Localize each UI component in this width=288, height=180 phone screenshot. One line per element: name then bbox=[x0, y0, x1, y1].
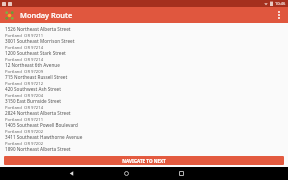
button[interactable]: Home bbox=[120, 167, 133, 180]
staticText: 1890 Northeast Alberta Street bbox=[5, 146, 71, 152]
staticText: Monday Route bbox=[20, 10, 73, 20]
staticText: 2824 Northeast Alberta Street bbox=[5, 110, 71, 116]
staticText: Portland, OR 97214 bbox=[5, 45, 44, 49]
staticText: 3411 Southeast Hawthorne Avenue bbox=[5, 134, 83, 140]
staticText: 1405 Southeast Powell Boulevard bbox=[5, 122, 78, 128]
button[interactable]: 3001 Southeast Morrison Street bbox=[0, 37, 288, 49]
staticText: Portland, OR 97202 bbox=[5, 141, 44, 145]
button[interactable]: Recent apps bbox=[175, 167, 188, 180]
staticText: Portland, OR 97211 bbox=[5, 117, 44, 121]
button[interactable]: 420 Southwest Ash Street bbox=[0, 85, 288, 97]
staticText: Portland, OR 97214 bbox=[5, 57, 44, 61]
button[interactable]: 1200 Southeast Stark Street bbox=[0, 49, 288, 61]
staticText: 3001 Southeast Morrison Street bbox=[5, 38, 75, 44]
button[interactable]: 12 Northeast 6th Avenue bbox=[0, 61, 288, 73]
button[interactable]: 2824 Northeast Alberta Street bbox=[0, 109, 288, 121]
staticText: 715 Northeast Russell Street bbox=[5, 74, 68, 80]
button[interactable]: 1526 Northeast Alberta Street bbox=[0, 25, 288, 37]
staticText: 3150 East Burnside Street bbox=[5, 98, 62, 104]
staticText: 420 Southwest Ash Street bbox=[5, 86, 61, 92]
button[interactable]: Back bbox=[65, 167, 78, 180]
button[interactable]: 3411 Southeast Hawthorne Avenue bbox=[0, 133, 288, 145]
staticText: 12 Northeast 6th Avenue bbox=[5, 62, 60, 68]
staticText: Portland, OR 97211 bbox=[5, 33, 44, 37]
button[interactable]: NAVIGATE TO NEXT bbox=[4, 156, 284, 165]
staticText: Portland, OR 97214 bbox=[5, 105, 44, 109]
button[interactable]: 715 Northeast Russell Street bbox=[0, 73, 288, 85]
staticText: 1200 Southeast Stark Street bbox=[5, 50, 66, 56]
staticText: 1526 Northeast Alberta Street bbox=[5, 26, 71, 32]
staticText: Portland, OR 97212 bbox=[5, 81, 44, 85]
staticText: NAVIGATE TO NEXT bbox=[122, 158, 166, 164]
staticText: 10:46 bbox=[275, 1, 286, 6]
button[interactable]: 1405 Southeast Powell Boulevard bbox=[0, 121, 288, 133]
button[interactable]: App icon bbox=[4, 10, 15, 21]
staticText: Portland, OR 97202 bbox=[5, 129, 44, 133]
button[interactable]: More options bbox=[272, 7, 286, 23]
staticText: Portland, OR 97204 bbox=[5, 93, 44, 97]
button[interactable]: 1890 Northeast Alberta Street bbox=[0, 145, 288, 154]
button[interactable]: 3150 East Burnside Street bbox=[0, 97, 288, 109]
staticText: Portland, OR 97209 bbox=[5, 69, 44, 73]
